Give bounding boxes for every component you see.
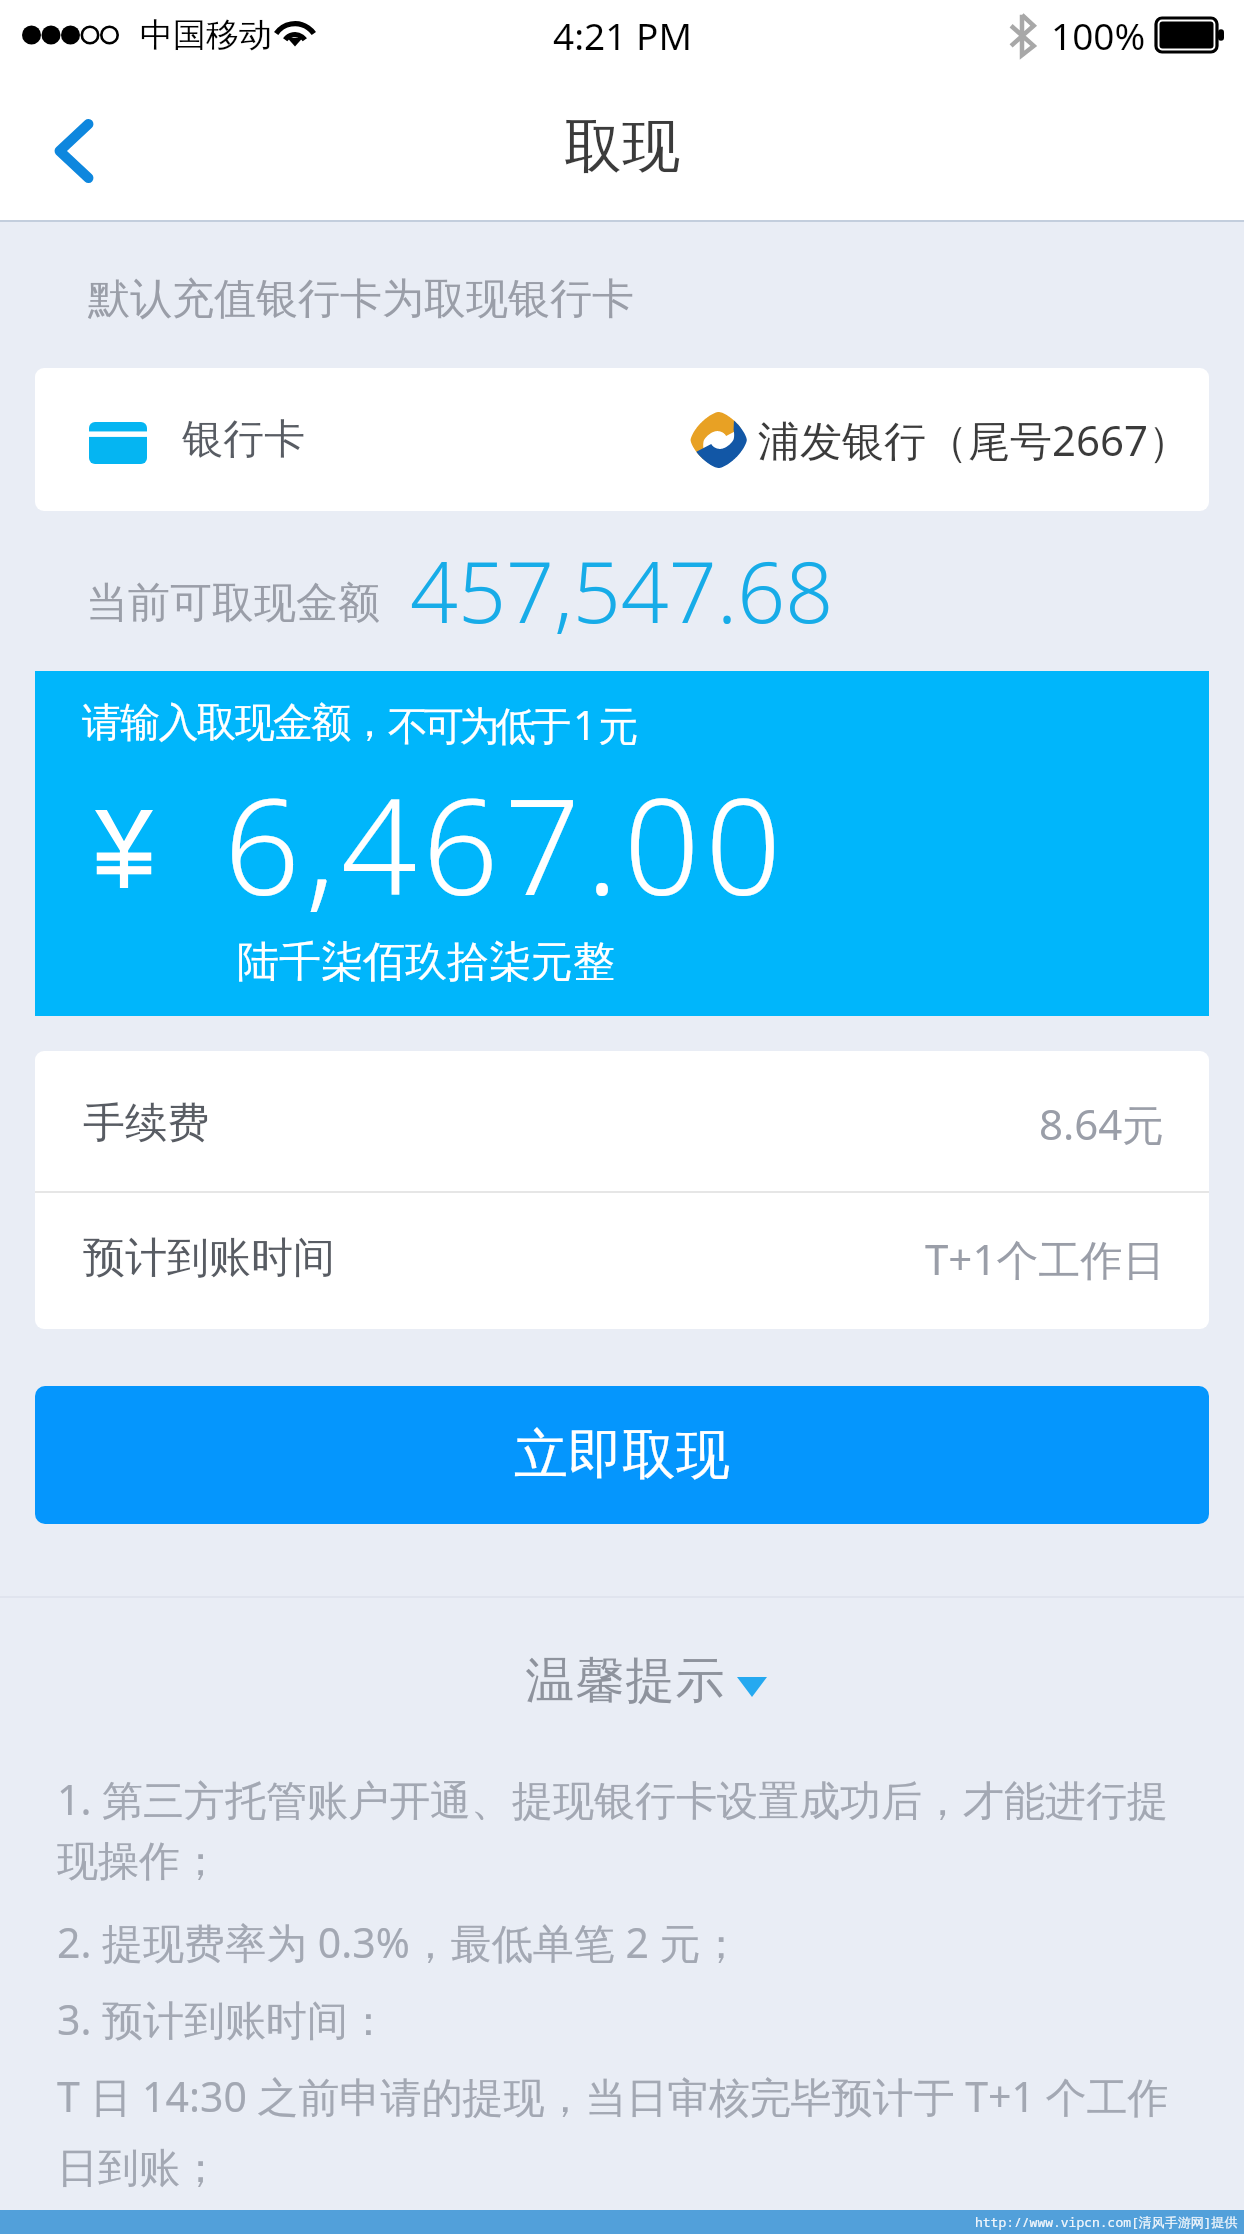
staticText: T+1个工作日 [925, 1230, 1165, 1287]
button[interactable]: 温馨提示 [48, 1650, 1244, 1712]
staticText: 取现 [564, 110, 680, 183]
staticText: T 日 14:30 之前申请的提现，当日审核完毕预计于 T+1 个工作 [57, 2068, 1169, 2124]
staticText: 立即取现 [514, 1421, 730, 1489]
staticText: 4:21 PM [553, 10, 692, 60]
staticText: 100% [1051, 10, 1146, 60]
staticText: 1. 第三方托管账户开通、提现银行卡设置成功后，才能进行提现操作； [57, 1771, 1204, 1887]
button[interactable]: Back [24, 96, 124, 196]
button[interactable]: 手续费 [83, 1051, 1165, 1191]
staticText: 日到账； [57, 2143, 221, 2195]
staticText: 手续费 [83, 1097, 209, 1150]
staticText: 请输入取现金额， [82, 697, 388, 747]
staticText: 6,467.00 [224, 753, 787, 934]
staticText: 陆千柒佰玖拾柒元整 [237, 936, 615, 989]
staticText: http://www.vipcn.com[清风手游网]提供 [975, 2213, 1238, 2231]
staticText: 银行卡 [182, 414, 305, 466]
staticText: 457,547.68 [410, 533, 834, 647]
staticText: 8.64元 [1039, 1095, 1165, 1152]
staticText: 不可为低于 1 元 [388, 697, 634, 752]
button[interactable]: 立即取现 [35, 1386, 1209, 1524]
staticText: 默认充值银行卡为取现银行卡 [88, 273, 634, 326]
staticText: 2. 提现费率为 0.3%，最低单笔 2 元； [57, 1914, 742, 1970]
button[interactable]: 预计到账时间 [83, 1193, 1165, 1329]
staticText: 浦发银行（尾号2667） [758, 411, 1191, 468]
staticText: 当前可取现金额 [86, 577, 380, 630]
staticText: 温馨提示 [525, 1650, 725, 1712]
staticText: 预计到账时间 [83, 1232, 335, 1285]
staticText: 3. 预计到账时间： [57, 1991, 390, 2047]
button[interactable]: 银行卡 [35, 368, 1209, 511]
staticText: 中国移动 [140, 14, 272, 56]
